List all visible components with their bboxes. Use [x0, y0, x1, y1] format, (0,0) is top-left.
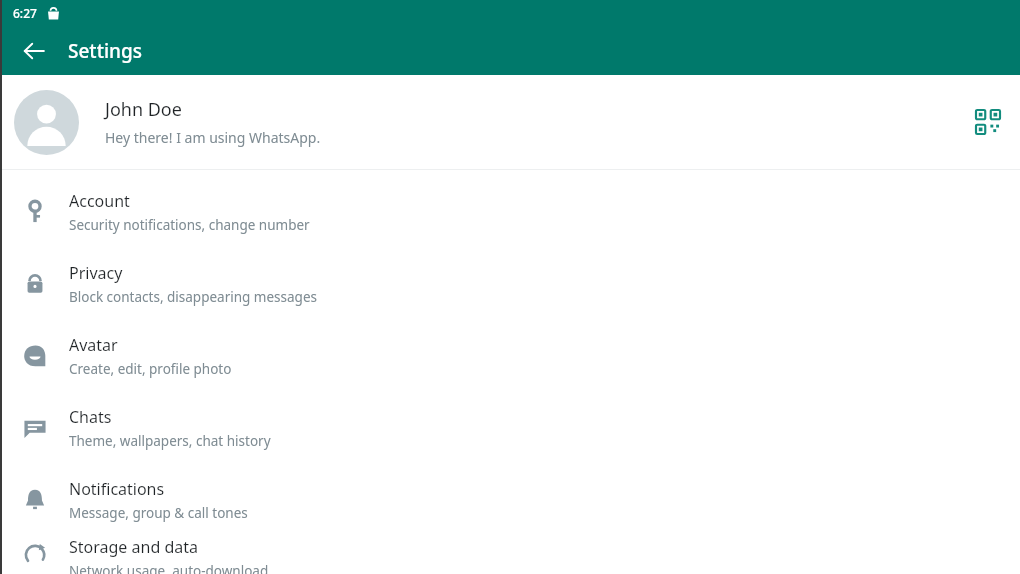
staticText: Storage and data	[69, 536, 198, 558]
staticText: 6:27	[13, 5, 37, 21]
staticText: Create, edit, profile photo	[69, 360, 232, 378]
staticText: Chats	[69, 406, 112, 428]
button[interactable]: Back	[10, 27, 58, 75]
button[interactable]: John Doe	[0, 75, 1020, 169]
staticText: John Doe	[105, 97, 182, 122]
staticText: Network usage, auto-download	[69, 562, 269, 574]
button[interactable]: Storage and data	[0, 536, 1020, 574]
staticText: Message, group & call tones	[69, 504, 248, 522]
staticText: Settings	[68, 38, 142, 64]
staticText: Security notifications, change number	[69, 216, 310, 234]
button[interactable]: Account	[0, 176, 1020, 248]
staticText: Account	[69, 190, 130, 212]
staticText: Block contacts, disappearing messages	[69, 288, 317, 306]
button[interactable]: Privacy	[0, 248, 1020, 320]
button[interactable]: Chats	[0, 392, 1020, 464]
staticText: Avatar	[69, 334, 118, 356]
staticText: Theme, wallpapers, chat history	[69, 432, 271, 450]
staticText: Hey there! I am using WhatsApp.	[105, 128, 321, 147]
button[interactable]: Notifications	[0, 464, 1020, 536]
staticText: Notifications	[69, 478, 165, 500]
button[interactable]: Avatar	[0, 320, 1020, 392]
button[interactable]: QR code	[966, 100, 1010, 144]
staticText: Privacy	[69, 262, 123, 284]
